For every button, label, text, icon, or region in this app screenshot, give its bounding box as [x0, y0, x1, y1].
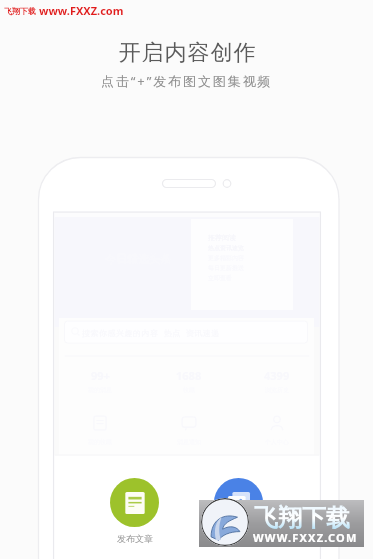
- staticText: WWW.FXXZ.COM: [253, 530, 358, 545]
- button[interactable]: 发布文章: [110, 478, 159, 544]
- staticText: 飞翔下载: [254, 503, 350, 533]
- button[interactable]: 发布图集: [214, 478, 263, 544]
- staticText: www.FXXZ.com: [39, 3, 124, 18]
- staticText: 开启内容创作: [118, 39, 256, 67]
- staticText: 飞翔下载: [4, 6, 36, 16]
- staticText: 发布文章: [117, 533, 153, 544]
- staticText: 点击“+”发布图文图集视频: [101, 72, 273, 90]
- staticText: 发布图集: [221, 533, 257, 544]
